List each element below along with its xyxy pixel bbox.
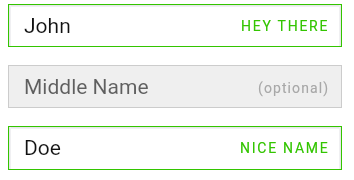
button[interactable]: Middle Name — [8, 65, 342, 108]
staticText: NICE NAME — [240, 140, 330, 156]
staticText: Doe — [24, 136, 61, 161]
staticText: HEY THERE — [241, 18, 330, 34]
staticText: (optional) — [258, 80, 330, 96]
button[interactable]: Doe — [8, 126, 342, 170]
staticText: John — [24, 14, 71, 39]
staticText: Middle Name — [24, 75, 149, 100]
button[interactable]: John — [8, 4, 342, 47]
